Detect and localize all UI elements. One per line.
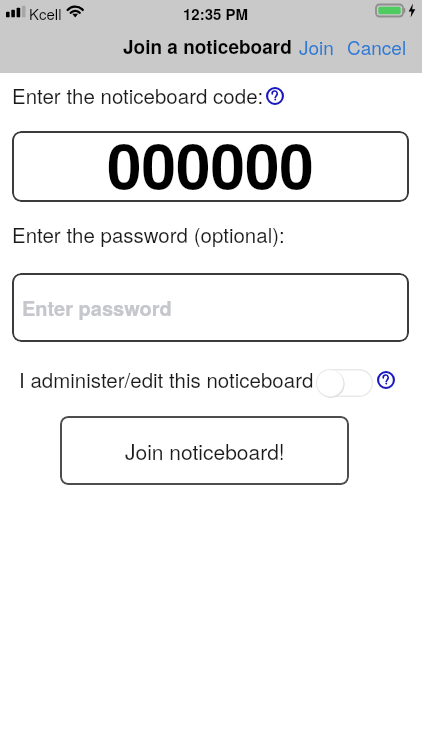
staticText: Join noticeboard! (125, 436, 285, 466)
staticText: 000000 (107, 131, 314, 190)
button[interactable]: Enter password (12, 273, 409, 342)
button[interactable]: Join (299, 33, 334, 60)
button[interactable]: Help: administer noticeboard (376, 370, 396, 390)
button[interactable]: Help: noticeboard code (265, 86, 285, 106)
staticText: Enter password (22, 293, 172, 322)
staticText: Enter the password (optional): (12, 219, 285, 248)
staticText: 12:35 PM (183, 3, 249, 24)
staticText: Join (299, 33, 334, 60)
staticText: I administer/edit this noticeboard (19, 364, 314, 393)
button[interactable]: Cancel (347, 33, 407, 60)
staticText: Kcell (29, 3, 62, 24)
staticText: Join a noticeboard (123, 33, 292, 60)
staticText: Cancel (347, 33, 407, 60)
staticText: Enter the noticeboard code: (12, 80, 264, 109)
button[interactable]: Join noticeboard! (60, 416, 349, 485)
button[interactable]: I administer/edit this noticeboard (316, 369, 373, 397)
button[interactable]: 000000 (12, 131, 409, 202)
